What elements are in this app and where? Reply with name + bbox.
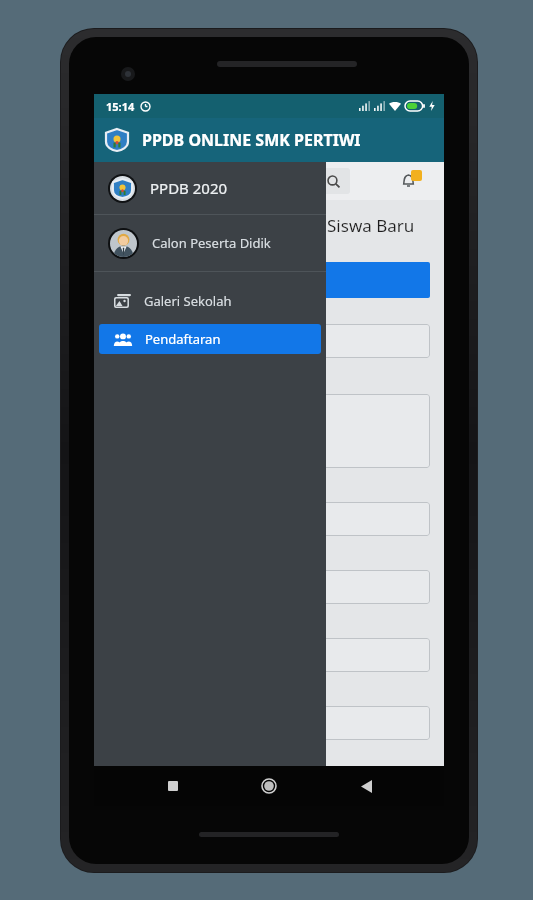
staticText: Pendaftaran (145, 330, 221, 348)
staticText: PPDB 2020 (150, 178, 228, 198)
button[interactable]: Galeri Sekolah (94, 284, 326, 318)
button[interactable] (108, 394, 430, 468)
button[interactable] (108, 570, 430, 604)
button[interactable]: PPDB 2020 (94, 162, 326, 214)
staticText: PPDB ONLINE SMK PERTIWI (142, 129, 361, 151)
staticText: 15:14 (106, 99, 135, 114)
staticText: Pendaftaran Siswa Baru (224, 214, 415, 237)
button[interactable] (108, 706, 430, 740)
staticText: Galeri Sekolah (144, 292, 232, 310)
button[interactable]: Back (348, 768, 384, 804)
button[interactable] (108, 324, 430, 358)
staticText: Calon Peserta Didik (152, 234, 271, 252)
button[interactable]: Recent apps (155, 768, 191, 804)
button[interactable] (108, 502, 430, 536)
button[interactable] (108, 262, 430, 298)
button[interactable]: Calon Peserta Didik (94, 215, 326, 271)
button[interactable]: Pendaftaran (99, 324, 321, 354)
button[interactable]: Home (251, 768, 287, 804)
button[interactable] (108, 638, 430, 672)
button[interactable]: Notifications (390, 167, 426, 195)
button[interactable]: Search (316, 168, 350, 194)
